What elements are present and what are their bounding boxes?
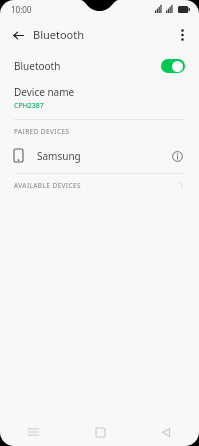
button[interactable]: Recents <box>0 418 67 446</box>
staticText: Samsung <box>37 149 81 163</box>
button[interactable]: Samsung <box>0 142 199 169</box>
button[interactable]: Bluetooth <box>0 51 199 80</box>
button[interactable]: Device name <box>0 80 199 113</box>
staticText: 10:00 <box>11 4 32 15</box>
button[interactable]: Home <box>67 418 133 446</box>
button[interactable]: Back <box>7 24 29 46</box>
staticText: AVAILABLE DEVICES <box>14 181 81 190</box>
staticText: Device name <box>14 85 75 99</box>
staticText: Bluetooth <box>14 59 61 73</box>
button[interactable]: Device details <box>167 146 187 166</box>
staticText: CPH2387 <box>14 101 44 111</box>
staticText: Bluetooth <box>33 27 85 42</box>
button[interactable]: Back <box>133 418 199 446</box>
staticText: PAIRED DEVICES <box>14 127 70 136</box>
button[interactable]: More options <box>171 24 193 46</box>
